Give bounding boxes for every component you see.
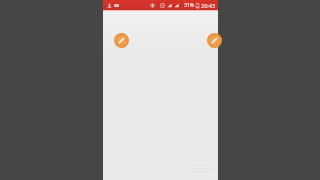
button[interactable]: Edit: [207, 33, 222, 48]
staticText: 31%: [184, 2, 194, 9]
staticText: 20:43: [201, 2, 216, 9]
button[interactable]: Edit: [114, 33, 129, 48]
